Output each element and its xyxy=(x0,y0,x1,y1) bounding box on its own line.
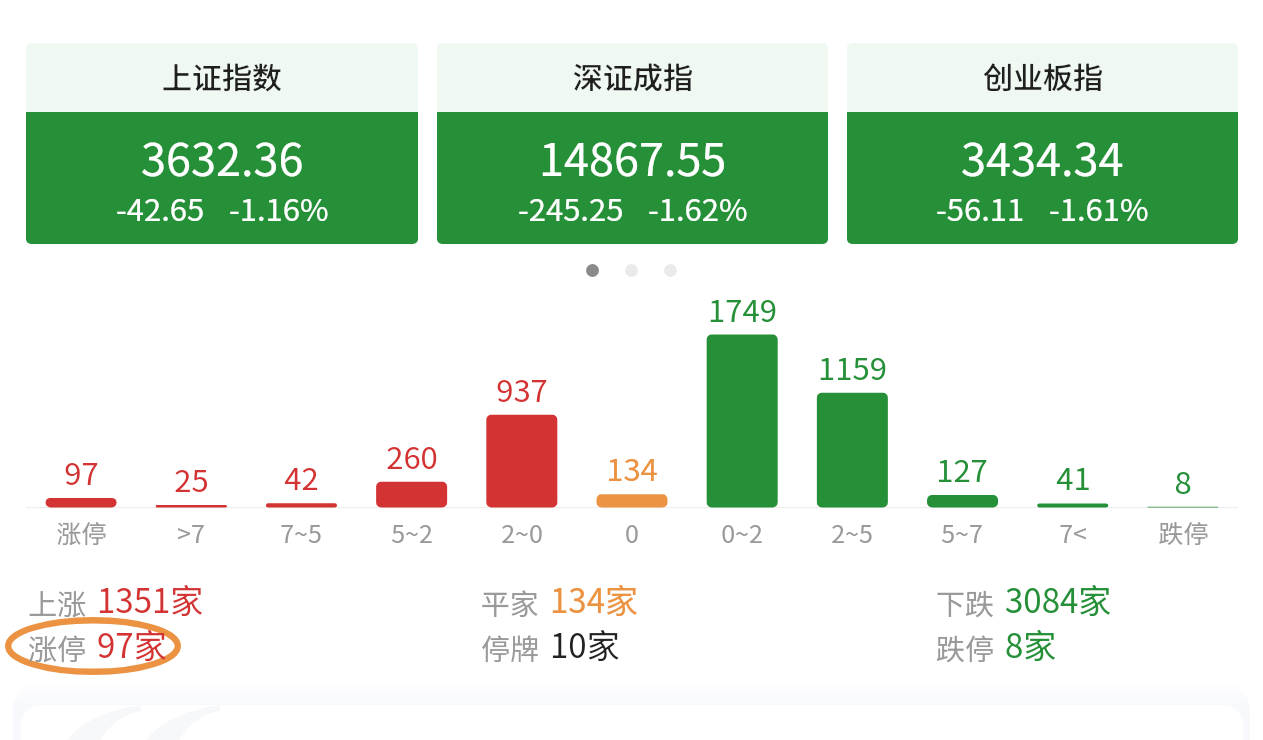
staticText: 创业板指 xyxy=(983,54,1103,97)
staticText: 134家 xyxy=(550,575,638,623)
staticText: 涨停 xyxy=(56,514,107,550)
staticText: 41 xyxy=(1056,454,1091,499)
staticText: 下跌 xyxy=(936,581,995,623)
button[interactable]: 跌停 xyxy=(936,620,1057,668)
staticText: 5~2 xyxy=(391,514,433,550)
staticText: 2~0 xyxy=(501,514,543,550)
staticText: 42 xyxy=(284,454,319,499)
button[interactable]: 2~5 xyxy=(797,514,907,550)
button[interactable]: 涨停 xyxy=(28,620,167,668)
staticText: 深证成指 xyxy=(573,54,693,97)
staticText: 3632.36 xyxy=(141,124,304,189)
staticText: 1159 xyxy=(818,344,887,389)
button[interactable]: Go to page 2 xyxy=(625,264,638,277)
button[interactable]: 平家 xyxy=(481,575,638,623)
staticText: 8 xyxy=(1174,458,1192,503)
staticText: -245.25 xyxy=(518,185,624,230)
button[interactable]: 跌停 xyxy=(1128,514,1238,550)
button[interactable]: 上涨 xyxy=(28,575,204,623)
staticText: 3084家 xyxy=(1005,575,1112,623)
button[interactable]: 上证指数 xyxy=(26,43,418,244)
staticText: 7~5 xyxy=(280,514,322,550)
staticText: 3434.34 xyxy=(961,124,1124,189)
staticText: 上涨 xyxy=(28,581,87,623)
staticText: 260 xyxy=(386,433,438,478)
button[interactable]: 下跌 xyxy=(936,575,1112,623)
staticText: 97家 xyxy=(97,620,167,668)
staticText: 10家 xyxy=(550,620,620,668)
button[interactable]: 涨停 xyxy=(26,514,136,550)
staticText: 134 xyxy=(606,445,658,490)
button[interactable]: 0 xyxy=(577,514,687,550)
button[interactable]: 停牌 xyxy=(481,620,620,668)
button[interactable]: Go to page 3 xyxy=(664,264,677,277)
staticText: 1351家 xyxy=(97,575,204,623)
button[interactable]: 5~7 xyxy=(907,514,1017,550)
staticText: 上证指数 xyxy=(162,54,282,97)
staticText: -56.11 xyxy=(936,185,1025,230)
staticText: >7 xyxy=(177,514,205,550)
staticText: 1749 xyxy=(708,286,777,331)
button[interactable]: 0~2 xyxy=(687,514,797,550)
staticText: -1.62% xyxy=(648,185,748,230)
button[interactable]: 创业板指 xyxy=(847,43,1238,244)
button[interactable]: 深证成指 xyxy=(437,43,828,244)
staticText: 25 xyxy=(174,456,209,501)
staticText: 跌停 xyxy=(936,626,995,668)
button[interactable]: 5~2 xyxy=(357,514,467,550)
staticText: 14867.55 xyxy=(539,124,727,189)
staticText: -1.16% xyxy=(229,185,329,230)
staticText: 7< xyxy=(1059,514,1087,550)
staticText: 2~5 xyxy=(831,514,873,550)
button[interactable]: Go to page 1 xyxy=(586,264,599,277)
staticText: 0~2 xyxy=(721,514,763,550)
staticText: 5~7 xyxy=(941,514,983,550)
staticText: -42.65 xyxy=(116,185,205,230)
staticText: 停牌 xyxy=(481,626,540,668)
button[interactable]: 7< xyxy=(1018,514,1128,550)
staticText: 937 xyxy=(496,366,548,411)
staticText: 127 xyxy=(936,446,988,491)
button[interactable]: 7~5 xyxy=(246,514,356,550)
staticText: 0 xyxy=(625,514,639,550)
staticText: -1.61% xyxy=(1049,185,1149,230)
button[interactable]: >7 xyxy=(136,514,246,550)
staticText: 跌停 xyxy=(1158,514,1209,550)
staticText: 8家 xyxy=(1005,620,1057,668)
staticText: 平家 xyxy=(481,581,540,623)
staticText: 97 xyxy=(64,449,99,494)
staticText: 涨停 xyxy=(28,626,87,668)
button[interactable]: 2~0 xyxy=(467,514,577,550)
